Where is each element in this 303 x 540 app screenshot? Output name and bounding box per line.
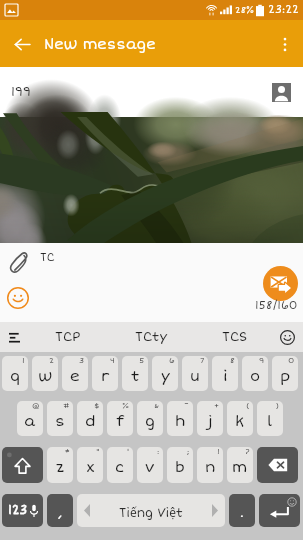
button[interactable]: TCS [193,322,277,352]
button[interactable]: t [122,356,148,391]
button[interactable]: Emoji [1,281,35,315]
staticText: a [24,412,36,430]
button[interactable] [257,447,298,483]
button[interactable]: o [242,356,268,391]
staticText: 2 [49,356,55,366]
staticText: k [235,412,245,430]
button[interactable]: Send message [263,266,298,301]
staticText: 5 [139,356,145,366]
staticText: d [85,412,96,430]
staticText: 3 [79,356,85,366]
button[interactable]: y [152,356,178,391]
staticText: v [145,458,155,476]
staticText: m [232,458,248,476]
staticText: 8 [230,356,235,366]
staticText: , [58,505,63,521]
button[interactable]: u [182,356,208,391]
staticText: u [190,367,200,385]
staticText: i [223,367,228,385]
staticText: n [205,458,216,476]
button[interactable]: Pick contact [269,80,293,104]
staticText: p [280,367,291,385]
staticText: x [86,458,95,476]
staticText: w [38,367,53,385]
button[interactable]: m [227,447,253,483]
button[interactable] [259,494,300,527]
button[interactable]: p [272,356,298,391]
staticText: ( [246,401,250,411]
staticText: & [154,401,160,411]
button[interactable]: w [32,356,58,391]
staticText: : [157,447,160,457]
staticText: TCP [55,329,81,345]
staticText: l [267,412,273,430]
button[interactable]: Back [6,28,38,60]
button[interactable]: i [212,356,238,391]
button[interactable]: b [167,447,193,483]
staticText: c [115,458,125,476]
button[interactable]: l [257,401,283,436]
staticText: 9 [259,356,265,366]
staticText: o [250,367,261,385]
staticText: h [175,412,186,430]
button[interactable]: n [197,447,223,483]
button[interactable]: h [167,401,193,436]
button[interactable]: Tiếng Việt [77,494,225,527]
staticText: t [131,367,140,385]
staticText: 123 [8,503,28,518]
button[interactable]: d [77,401,103,436]
staticText: TCty [135,329,168,345]
staticText: + [214,401,220,411]
button[interactable]: TCty [109,322,193,352]
button[interactable]: 123 [2,494,43,527]
staticText: s [55,412,65,430]
staticText: * [65,447,70,457]
button[interactable]: q [2,356,28,391]
staticText: 158/160 [255,299,298,313]
button[interactable]: z [47,447,73,483]
button[interactable]: a [17,401,43,436]
button[interactable]: , [47,494,73,527]
staticText: New message [44,35,156,53]
button[interactable]: More options [270,29,300,59]
button[interactable]: TCP [26,322,109,352]
staticText: f [116,412,125,430]
button[interactable]: j [197,401,223,436]
button[interactable]: g [137,401,163,436]
staticText: z [56,458,65,476]
staticText: ? [245,447,250,457]
staticText: r [101,367,110,385]
staticText: $ [94,401,100,411]
staticText: ¯ [184,401,190,411]
staticText: 4 [110,356,115,366]
staticText: e [70,367,80,385]
staticText: . [240,505,244,521]
button[interactable]: e [62,356,88,391]
button[interactable]: s [47,401,73,436]
staticText: Tiếng Việt [119,504,183,520]
staticText: 0 [288,356,295,366]
staticText: 1 [22,356,25,366]
button[interactable] [2,447,43,483]
staticText: ; [187,447,190,457]
staticText: @ [32,401,40,411]
button[interactable]: Attach [1,246,35,280]
staticText: 6 [169,356,175,366]
button[interactable]: Emoji keyboard [276,326,298,348]
button[interactable]: f [107,401,133,436]
button[interactable]: v [137,447,163,483]
staticText: ! [217,447,220,457]
staticText: ' [127,447,130,457]
button[interactable]: . [229,494,255,527]
button[interactable]: c [107,447,133,483]
staticText: TCS [222,329,248,345]
staticText: 23:22 [268,3,300,17]
staticText: % [122,401,130,411]
button[interactable]: r [92,356,118,391]
staticText: 28% [235,5,255,16]
button[interactable]: k [227,401,253,436]
button[interactable]: Keyboard menu [2,325,26,349]
staticText: q [10,367,21,385]
staticText: 199 [11,85,31,100]
button[interactable]: x [77,447,103,483]
